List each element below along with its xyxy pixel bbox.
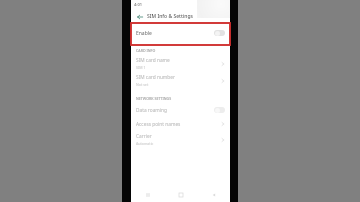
button[interactable]: Enable	[131, 23, 230, 43]
staticText: SIM card number	[136, 74, 175, 81]
staticText: Enable	[136, 30, 152, 37]
staticText: Access point names	[136, 121, 181, 128]
staticText: Data roaming	[136, 107, 214, 114]
button[interactable]: Carrier	[131, 131, 230, 148]
button[interactable]: Back	[134, 11, 145, 22]
button[interactable]: Home	[164, 187, 197, 202]
button[interactable]: Access point names	[131, 117, 230, 131]
button[interactable]: SIM card name	[131, 55, 230, 72]
staticText: Not set	[136, 82, 149, 87]
button[interactable]: Data roaming	[131, 103, 230, 117]
staticText: Automatic	[136, 141, 154, 146]
staticText: SIM card name	[136, 57, 170, 64]
staticText: NETWORK SETTINGS	[136, 96, 172, 101]
staticText: 4:01	[134, 2, 142, 7]
button[interactable]: SIM card number	[131, 72, 230, 89]
staticText: Carrier	[136, 133, 152, 140]
button[interactable]: Recent apps	[131, 187, 164, 202]
staticText: SIM 1	[136, 65, 146, 70]
staticText: SIM Info & Settings	[147, 13, 193, 20]
staticText: CARD INFO	[136, 48, 156, 53]
